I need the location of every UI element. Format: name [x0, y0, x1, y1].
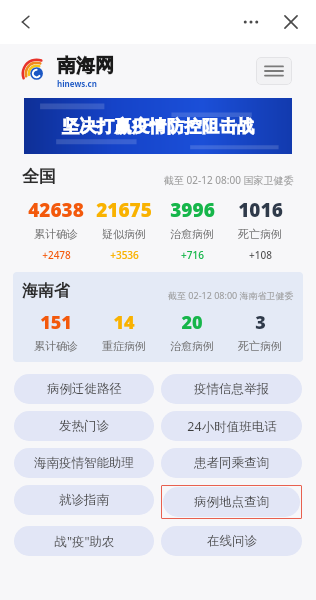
- button[interactable]: 就诊指南: [14, 485, 154, 515]
- staticText: 坚决打赢疫情防控阻击战: [62, 116, 255, 137]
- staticText: 海南省: [22, 281, 70, 301]
- button[interactable]: 42638: [22, 197, 90, 262]
- staticText: 就诊指南: [59, 492, 109, 508]
- staticText: 病例地点查询: [194, 494, 269, 510]
- button[interactable]: 21675: [90, 197, 158, 262]
- button[interactable]: 24小时值班电话: [161, 411, 302, 441]
- staticText: 死亡病例: [238, 339, 282, 353]
- staticText: 治愈病例: [170, 339, 214, 353]
- staticText: 海南疫情智能助理: [34, 455, 134, 471]
- button[interactable]: 海南省: [13, 272, 303, 362]
- staticText: 在线问诊: [207, 533, 257, 549]
- staticText: +2478: [42, 248, 71, 262]
- staticText: 3996: [170, 197, 215, 223]
- staticText: 1016: [238, 197, 283, 223]
- staticText: +108: [249, 248, 272, 262]
- staticText: 24小时值班电话: [187, 418, 277, 435]
- button[interactable]: 战"疫"助农: [14, 526, 154, 556]
- button[interactable]: 疫情信息举报: [161, 374, 302, 404]
- button[interactable]: 坚决打赢疫情防控阻击战: [24, 98, 292, 154]
- staticText: +716: [181, 248, 204, 262]
- staticText: 疫情信息举报: [194, 381, 269, 397]
- staticText: 3: [255, 310, 266, 335]
- staticText: 南海网: [57, 54, 114, 78]
- staticText: 151: [40, 310, 72, 335]
- staticText: 截至 02-12 08:00 国家卫健委: [164, 173, 294, 187]
- staticText: 20: [181, 310, 203, 335]
- button[interactable]: Back: [10, 6, 42, 38]
- button[interactable]: 病例地点查询: [163, 487, 300, 517]
- staticText: +3536: [110, 248, 139, 262]
- staticText: 战"疫"助农: [54, 533, 115, 550]
- staticText: 截至 02-12 08:00 海南省卫健委: [168, 289, 294, 301]
- staticText: hinews.cn: [57, 78, 97, 89]
- button[interactable]: 发热门诊: [14, 411, 154, 441]
- button[interactable]: Close: [276, 7, 306, 37]
- staticText: 21675: [96, 197, 152, 223]
- staticText: 患者同乘查询: [194, 455, 269, 471]
- staticText: 全国: [22, 166, 56, 187]
- staticText: 累计确诊: [34, 227, 78, 241]
- button[interactable]: 在线问诊: [161, 526, 302, 556]
- staticText: 发热门诊: [59, 418, 109, 434]
- staticText: 累计确诊: [34, 339, 78, 353]
- button[interactable]: 患者同乘查询: [161, 448, 302, 478]
- button[interactable]: 病例迁徙路径: [14, 374, 154, 404]
- staticText: 重症病例: [102, 339, 146, 353]
- button[interactable]: Menu: [256, 57, 292, 85]
- button[interactable]: 3996: [158, 197, 226, 262]
- staticText: 治愈病例: [170, 227, 214, 241]
- button[interactable]: More options: [236, 7, 266, 37]
- staticText: 疑似病例: [102, 227, 146, 241]
- button[interactable]: 1016: [226, 197, 294, 262]
- staticText: 病例迁徙路径: [47, 381, 122, 397]
- button[interactable]: 海南疫情智能助理: [14, 448, 154, 478]
- staticText: 42638: [28, 197, 84, 223]
- staticText: 14: [113, 310, 135, 335]
- staticText: 死亡病例: [238, 227, 282, 241]
